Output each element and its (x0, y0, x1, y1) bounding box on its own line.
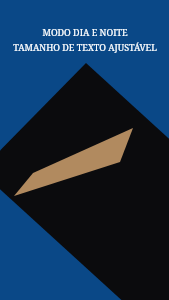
staticText: MODO DIA E NOITE (42, 26, 128, 38)
staticText: TAMANHO DE TEXTO AJUSTÁVEL (13, 41, 157, 53)
